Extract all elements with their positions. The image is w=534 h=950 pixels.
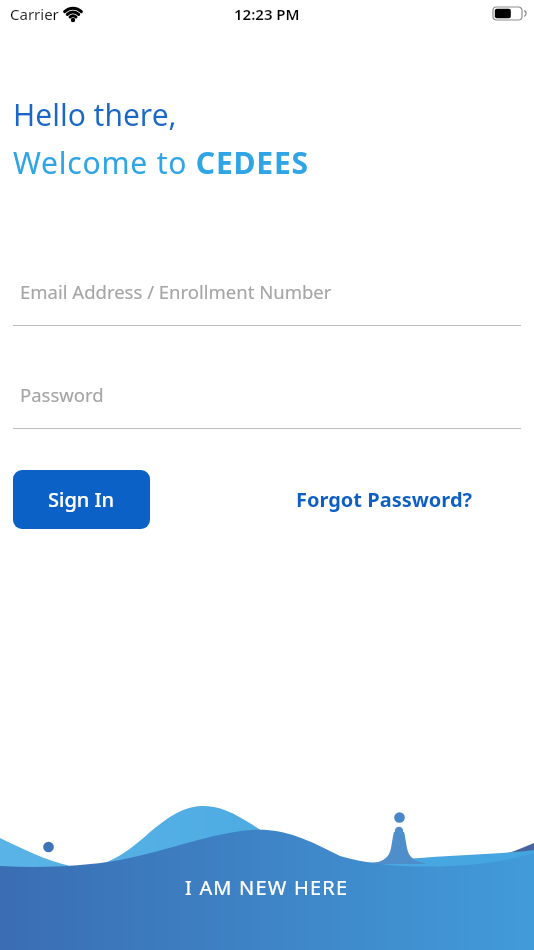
- button[interactable]: I AM NEW HERE: [185, 874, 349, 901]
- staticText: Email Address / Enrollment Number: [20, 279, 332, 304]
- button[interactable]: Forgot Password?: [296, 486, 473, 513]
- staticText: Welcome to CEDEES: [13, 142, 309, 183]
- staticText: Carrier: [10, 4, 59, 24]
- staticText: 12:23 PM: [234, 4, 300, 24]
- button[interactable]: Sign In: [13, 470, 150, 529]
- staticText: Hello there,: [13, 94, 177, 135]
- staticText: Sign In: [48, 486, 115, 513]
- staticText: Password: [20, 382, 104, 407]
- button[interactable]: Password: [0, 373, 534, 429]
- button[interactable]: Email Address / Enrollment Number: [0, 270, 534, 326]
